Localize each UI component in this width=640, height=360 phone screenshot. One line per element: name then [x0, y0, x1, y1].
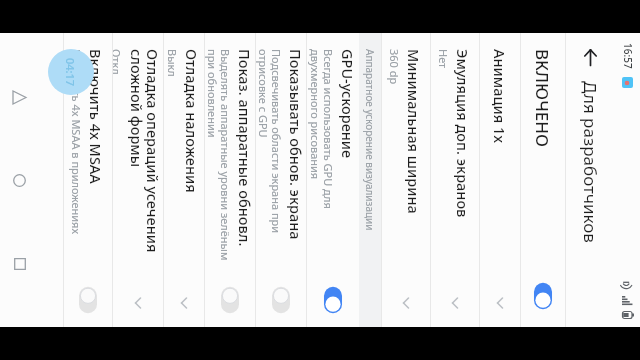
- button[interactable]: Главный экран: [0, 160, 40, 200]
- staticText: GPU-ускорение: [338, 49, 358, 159]
- button[interactable]: [77, 283, 99, 317]
- staticText: Нет: [436, 49, 451, 69]
- button[interactable]: Обзор: [0, 244, 40, 284]
- button[interactable]: Показывать обнов. экрана: [256, 33, 306, 327]
- button[interactable]: [532, 279, 554, 313]
- button[interactable]: [322, 283, 344, 317]
- button[interactable]: Таймер: [48, 49, 94, 95]
- staticText: Отладка операций усечения сложной формы: [126, 49, 163, 283]
- button[interactable]: Включить 4x MSAA: [64, 33, 112, 327]
- button[interactable]: Минимальная ширина: [382, 33, 430, 327]
- staticText: Включить 4x MSAA в приложениях: [69, 49, 84, 235]
- button[interactable]: Эмуляция доп. экранов: [431, 33, 479, 327]
- button[interactable]: Показ. аппаратные обновл.: [205, 33, 255, 327]
- staticText: Эмуляция доп. экранов: [453, 49, 473, 218]
- staticText: Выделять аппаратные уровни зелёным при о…: [205, 49, 233, 277]
- button[interactable]: Отладка операций усечения сложной формы: [113, 33, 163, 327]
- staticText: Откл: [113, 49, 124, 75]
- staticText: ВКЛЮЧЕНО: [531, 49, 554, 148]
- button[interactable]: [270, 283, 292, 317]
- staticText: Минимальная ширина: [404, 49, 424, 214]
- staticText: Показывать обнов. экрана: [286, 49, 306, 240]
- button[interactable]: Отладка наложения: [164, 33, 204, 327]
- staticText: Показ. аппаратные обновл.: [235, 49, 255, 247]
- staticText: Включить 4x MSAA: [86, 49, 106, 184]
- staticText: Отладка наложения: [182, 49, 202, 193]
- button[interactable]: GPU-ускорение: [307, 33, 359, 327]
- staticText: Выкл: [165, 49, 180, 77]
- button[interactable]: Анимация 1x: [480, 33, 520, 327]
- button[interactable]: Назад: [0, 77, 40, 117]
- staticText: 04:17: [63, 58, 78, 87]
- button[interactable]: Назад: [567, 33, 615, 81]
- staticText: Подсвечивать области экрана при отрисовк…: [256, 49, 284, 277]
- button[interactable]: [219, 283, 241, 317]
- staticText: Анимация 1x: [490, 49, 510, 144]
- staticText: Для разработчиков: [579, 81, 602, 243]
- staticText: 16:57: [621, 43, 635, 69]
- staticText: 360 dp: [387, 49, 402, 85]
- staticText: Аппаратное ускорение визуализации: [363, 49, 377, 231]
- staticText: Всегда использовать GPU для двухмерного …: [308, 49, 336, 277]
